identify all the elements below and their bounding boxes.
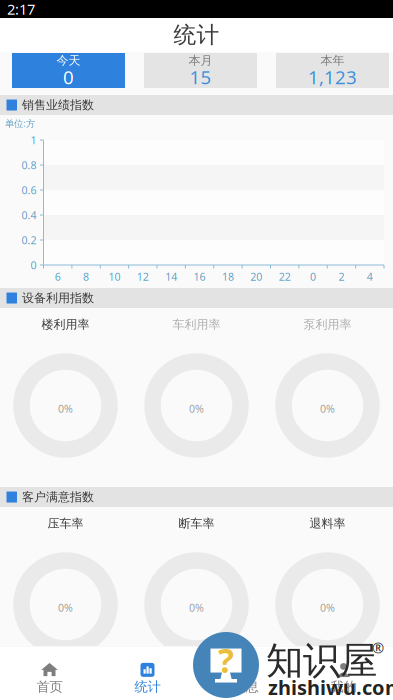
staticText: 消息 [232, 679, 258, 695]
staticText: 0% [320, 600, 335, 615]
staticText: 退料率 [309, 516, 345, 531]
staticText: 车利用率 [172, 317, 220, 332]
staticText: 统计 [173, 21, 219, 49]
button[interactable]: 本年 [276, 53, 389, 88]
staticText: 客户满意指数 [22, 490, 94, 504]
staticText: 0% [189, 401, 204, 416]
staticText: 0 [30, 258, 36, 272]
staticText: ? [218, 638, 234, 682]
staticText: 22 [279, 269, 291, 284]
staticText: 16 [194, 269, 206, 284]
staticText: 1 [30, 133, 36, 147]
staticText: 0.2 [21, 233, 36, 247]
staticText: 14 [165, 269, 177, 284]
staticText: 0% [189, 600, 204, 615]
staticText: 0 [63, 65, 74, 89]
staticText: 20 [250, 269, 262, 284]
staticText: 单位:方 [5, 117, 35, 129]
button[interactable]: 消息 [196, 646, 294, 700]
staticText: 0% [320, 401, 335, 416]
staticText: 我的 [330, 679, 356, 695]
staticText: 泵利用率 [303, 317, 351, 332]
staticText: 0.6 [21, 183, 36, 197]
staticText: 本年 [320, 53, 344, 68]
button[interactable]: 今天 [12, 53, 125, 88]
staticText: 0% [58, 401, 73, 416]
staticText: 8 [83, 269, 89, 284]
staticText: 楼利用率 [41, 317, 89, 332]
staticText: 销售业绩指数 [22, 98, 94, 112]
button[interactable]: 我的 [294, 646, 392, 700]
staticText: 今天 [56, 53, 80, 68]
button[interactable]: 首页 [0, 646, 98, 700]
staticText: ® [372, 638, 384, 657]
staticText: 18 [222, 269, 234, 284]
staticText: 0.8 [21, 158, 36, 172]
button[interactable]: 本月 [144, 53, 257, 88]
staticText: 0 [310, 269, 316, 284]
staticText: 2 [338, 269, 344, 284]
staticText: 2:17 [7, 0, 35, 19]
staticText: 设备利用指数 [22, 291, 94, 305]
staticText: 1,123 [308, 65, 357, 89]
staticText: 6 [55, 269, 61, 284]
staticText: 0.4 [21, 208, 36, 222]
staticText: 15 [189, 65, 211, 89]
staticText: 10 [108, 269, 120, 284]
staticText: zhishiwu.com [268, 674, 393, 700]
button[interactable]: 统计 [98, 646, 196, 700]
staticText: 4 [367, 269, 373, 284]
staticText: 本月 [188, 53, 212, 68]
staticText: 断车率 [178, 516, 214, 531]
staticText: 知识屋 [266, 638, 377, 684]
staticText: 压车率 [47, 516, 83, 531]
staticText: 首页 [36, 679, 62, 695]
staticText: 12 [137, 269, 149, 284]
staticText: 0% [58, 600, 73, 615]
staticText: 统计 [134, 679, 160, 695]
